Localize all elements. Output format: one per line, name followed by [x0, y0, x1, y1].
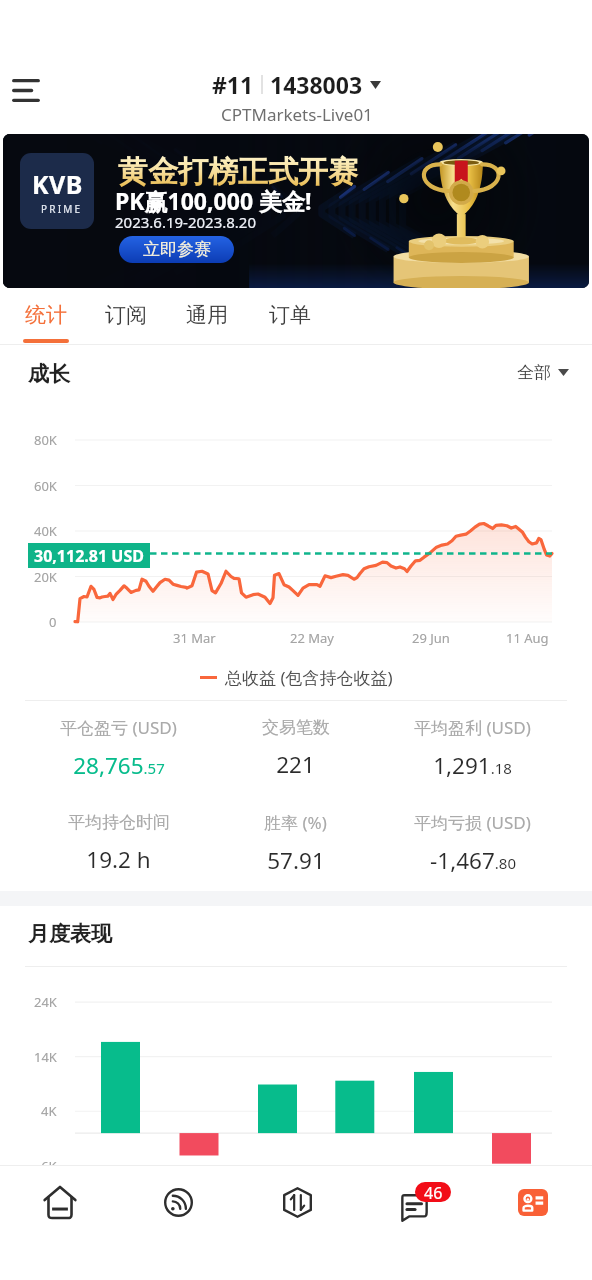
staticText: 统计 — [25, 302, 67, 328]
button[interactable]: #11 — [206, 67, 387, 128]
staticText: 19.2 h — [86, 844, 151, 875]
staticText: 29 Jun — [412, 629, 450, 647]
button[interactable]: 全部 — [517, 362, 569, 383]
button[interactable]: 订阅 — [94, 288, 158, 345]
staticText: 11 Aug — [506, 629, 549, 647]
staticText: 立即参赛 — [143, 239, 211, 260]
staticText: 4K — [41, 1102, 57, 1120]
button[interactable]: 统计 — [14, 288, 78, 345]
staticText: #11 — [212, 69, 254, 100]
staticText: 60K — [34, 477, 57, 495]
staticText: 30,112.81 USD — [34, 545, 144, 567]
staticText: 通用 — [186, 302, 228, 328]
staticText: 平均亏损 (USD) — [414, 811, 531, 834]
staticText: 成长 — [28, 361, 70, 387]
staticText: 平均盈利 (USD) — [414, 716, 531, 739]
staticText: 20K — [34, 568, 57, 586]
staticText: 1,291.18 — [433, 750, 512, 781]
button[interactable]: 订单 — [258, 288, 322, 345]
staticText: 14K — [34, 1048, 57, 1066]
staticText: 平均持仓时间 — [68, 812, 170, 833]
staticText: 28,765.57 — [73, 750, 165, 781]
staticText: 黄金打榜正式开赛 — [118, 153, 358, 191]
staticText: 总收益 (包含持仓收益) — [225, 666, 393, 689]
staticText: 2023.6.19-2023.8.20 — [115, 212, 257, 232]
staticText: PRIME — [41, 202, 83, 216]
staticText: 22 May — [290, 629, 334, 647]
staticText: 46 — [424, 1182, 443, 1202]
staticText: 80K — [34, 431, 57, 449]
button[interactable]: Profile — [474, 1166, 592, 1238]
staticText: KVB — [32, 167, 83, 201]
button[interactable]: Messages — [356, 1166, 474, 1238]
staticText: 月度表现 — [28, 921, 112, 947]
button[interactable]: 通用 — [175, 288, 239, 345]
button[interactable]: Signals — [119, 1166, 238, 1238]
button[interactable]: 立即参赛 — [119, 236, 234, 263]
staticText: 24K — [34, 993, 57, 1011]
staticText: 221 — [276, 749, 315, 780]
staticText: 全部 — [517, 362, 551, 383]
staticText: 交易笔数 — [262, 717, 330, 738]
staticText: PK赢100,000 美金! — [115, 185, 312, 216]
staticText: 40K — [34, 522, 57, 540]
button[interactable]: Menu — [2, 66, 50, 114]
staticText: 0 — [49, 613, 57, 631]
staticText: 订阅 — [105, 302, 147, 328]
button[interactable]: KVB — [3, 134, 589, 288]
staticText: 胜率 (%) — [264, 811, 327, 834]
staticText: CPTMarkets-Live01 — [221, 103, 373, 126]
staticText: 57.91 — [267, 845, 325, 876]
staticText: -6K — [37, 1157, 57, 1175]
staticText: 31 Mar — [173, 629, 216, 647]
staticText: -1,467.80 — [430, 845, 516, 876]
staticText: 订单 — [269, 302, 311, 328]
button[interactable]: Home — [0, 1166, 119, 1238]
staticText: 平仓盈亏 (USD) — [60, 716, 177, 739]
button[interactable]: Trade — [238, 1166, 356, 1238]
staticText: 1438003 — [270, 69, 363, 100]
